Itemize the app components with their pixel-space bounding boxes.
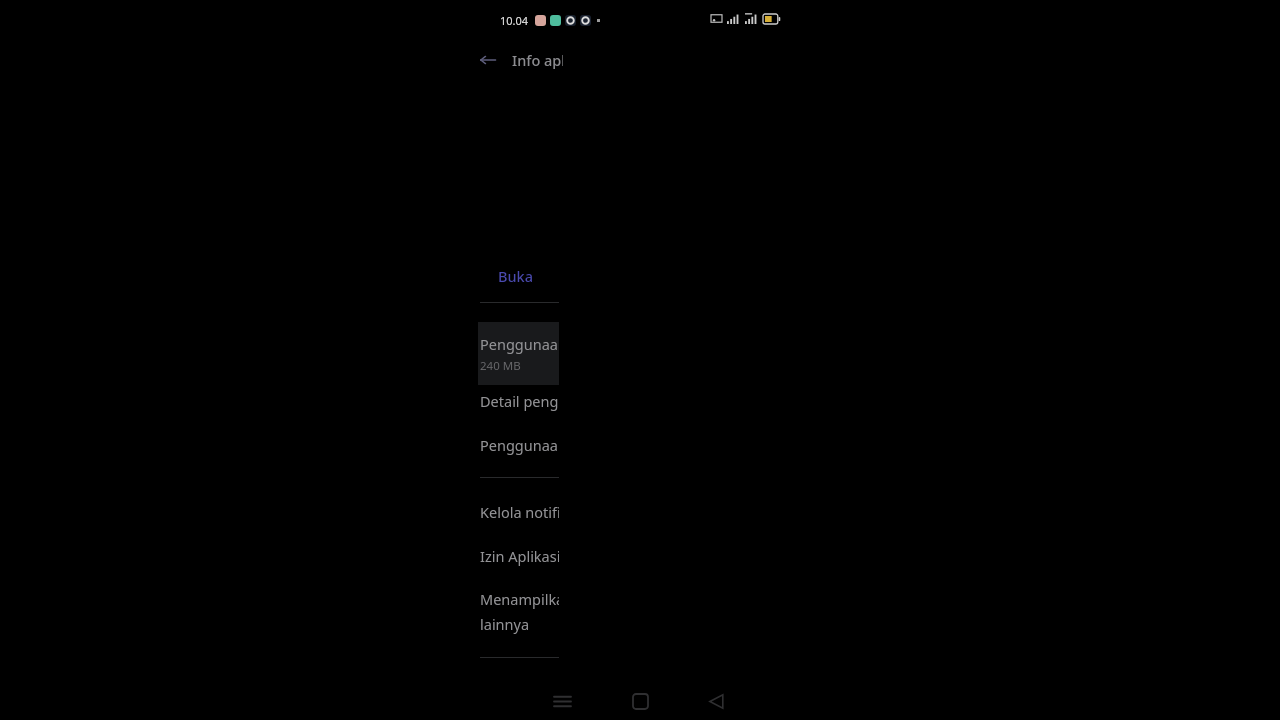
button[interactable]: Aplikasi terbaru: [541, 680, 583, 720]
button[interactable]: Kembali: [695, 680, 737, 720]
button[interactable]: Penggunaan penyimpanan: [478, 322, 559, 385]
staticText: 10.04: [500, 13, 529, 28]
staticText: Penggunaan baterai: [480, 435, 559, 455]
staticText: Penggunaan penyimpanan: [480, 334, 559, 354]
staticText: lainnya: [480, 614, 530, 634]
staticText: Detail penggunaan data: [480, 391, 559, 411]
staticText: Izin Aplikasi: [480, 546, 559, 566]
staticText: Info aplikasi: [512, 50, 563, 70]
staticText: Buka: [498, 266, 533, 286]
button[interactable]: Layar utama: [619, 680, 661, 720]
button[interactable]: Izin Aplikasi: [478, 546, 559, 566]
staticText: Kelola notifikasi: [480, 502, 559, 522]
staticText: 240 MB: [480, 358, 521, 374]
button[interactable]: Penggunaan baterai: [478, 435, 559, 455]
button[interactable]: Buka: [478, 263, 559, 289]
button[interactable]: Detail penggunaan data: [478, 391, 559, 411]
button[interactable]: Kelola notifikasi: [478, 502, 559, 522]
staticText: Menampilkan setelan: [480, 589, 559, 609]
button[interactable]: Kembali: [472, 44, 504, 76]
